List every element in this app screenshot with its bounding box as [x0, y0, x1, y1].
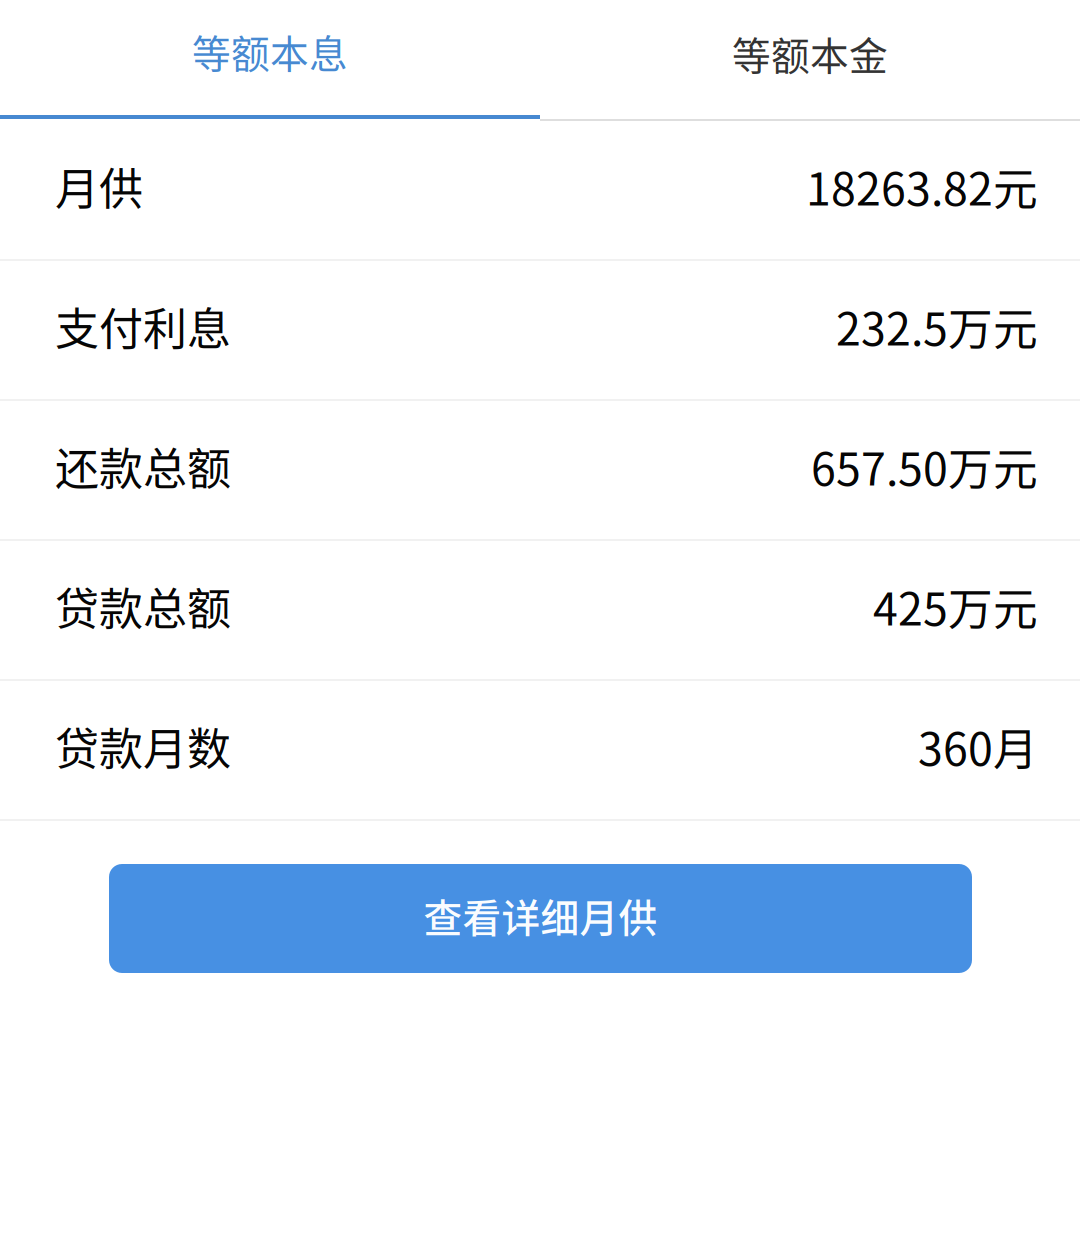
staticText: 贷款总额 — [55, 574, 231, 638]
staticText: 657.50万元 — [811, 434, 1038, 498]
staticText: 232.5万元 — [836, 294, 1038, 358]
button[interactable]: 查看详细月供 — [109, 864, 972, 973]
staticText: 等额本息 — [192, 23, 348, 79]
button[interactable]: 等额本金 — [540, 0, 1080, 121]
staticText: 贷款月数 — [55, 714, 231, 778]
staticText: 360月 — [918, 714, 1038, 778]
staticText: 还款总额 — [55, 434, 231, 498]
staticText: 18263.82元 — [806, 154, 1038, 218]
staticText: 月供 — [55, 154, 143, 218]
button[interactable]: 等额本息 — [0, 0, 540, 121]
staticText: 等额本金 — [732, 25, 888, 81]
staticText: 支付利息 — [55, 294, 231, 358]
staticText: 425万元 — [873, 574, 1038, 638]
staticText: 查看详细月供 — [423, 887, 657, 943]
